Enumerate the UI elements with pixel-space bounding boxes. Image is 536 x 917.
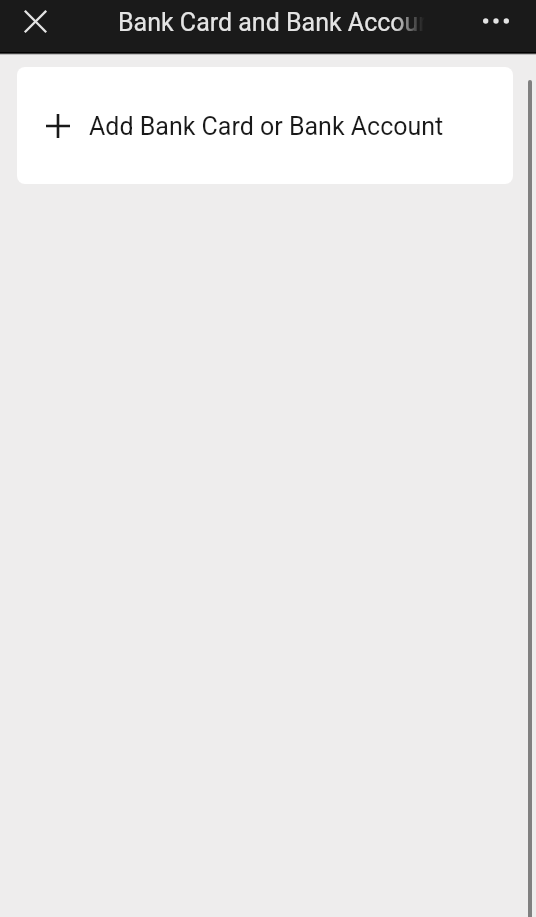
button[interactable]: Close	[11, 0, 59, 42]
button[interactable]: Add Bank Card or Bank Account	[17, 67, 513, 184]
button[interactable]: More options	[472, 0, 520, 42]
staticText: Add Bank Card or Bank Account	[89, 112, 444, 141]
staticText: Bank Card and Bank Account	[118, 8, 428, 37]
